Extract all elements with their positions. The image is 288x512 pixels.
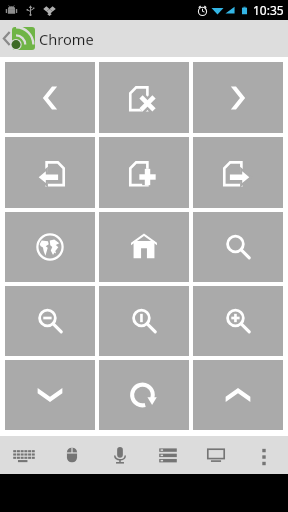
button[interactable]: Zoom in	[193, 286, 283, 356]
button[interactable]: Refresh	[99, 360, 189, 430]
staticText: 10:35	[253, 2, 284, 18]
button[interactable]: Zoom out	[5, 286, 95, 356]
button[interactable]: Close tab	[99, 62, 189, 133]
button[interactable]: Menu	[144, 436, 192, 474]
button[interactable]: Home	[99, 212, 189, 282]
button[interactable]: Screen	[192, 436, 240, 474]
button[interactable]: Scroll up	[193, 360, 283, 430]
button[interactable]: Search	[193, 212, 283, 282]
button[interactable]: Previous page	[5, 137, 95, 208]
button[interactable]: Voice	[96, 436, 144, 474]
button[interactable]: New tab	[99, 137, 189, 208]
button[interactable]: Keyboard	[0, 436, 48, 474]
button[interactable]: More options	[240, 436, 288, 474]
button[interactable]: Forward	[193, 62, 283, 133]
button[interactable]: Web	[5, 212, 95, 282]
button[interactable]: Up	[0, 27, 35, 50]
button[interactable]: Scroll down	[5, 360, 95, 430]
button[interactable]: Next page	[193, 137, 283, 208]
button[interactable]: Back	[5, 62, 95, 133]
button[interactable]: Reset zoom	[99, 286, 189, 356]
button[interactable]: Mouse	[48, 436, 96, 474]
staticText: Chrome	[39, 29, 94, 49]
